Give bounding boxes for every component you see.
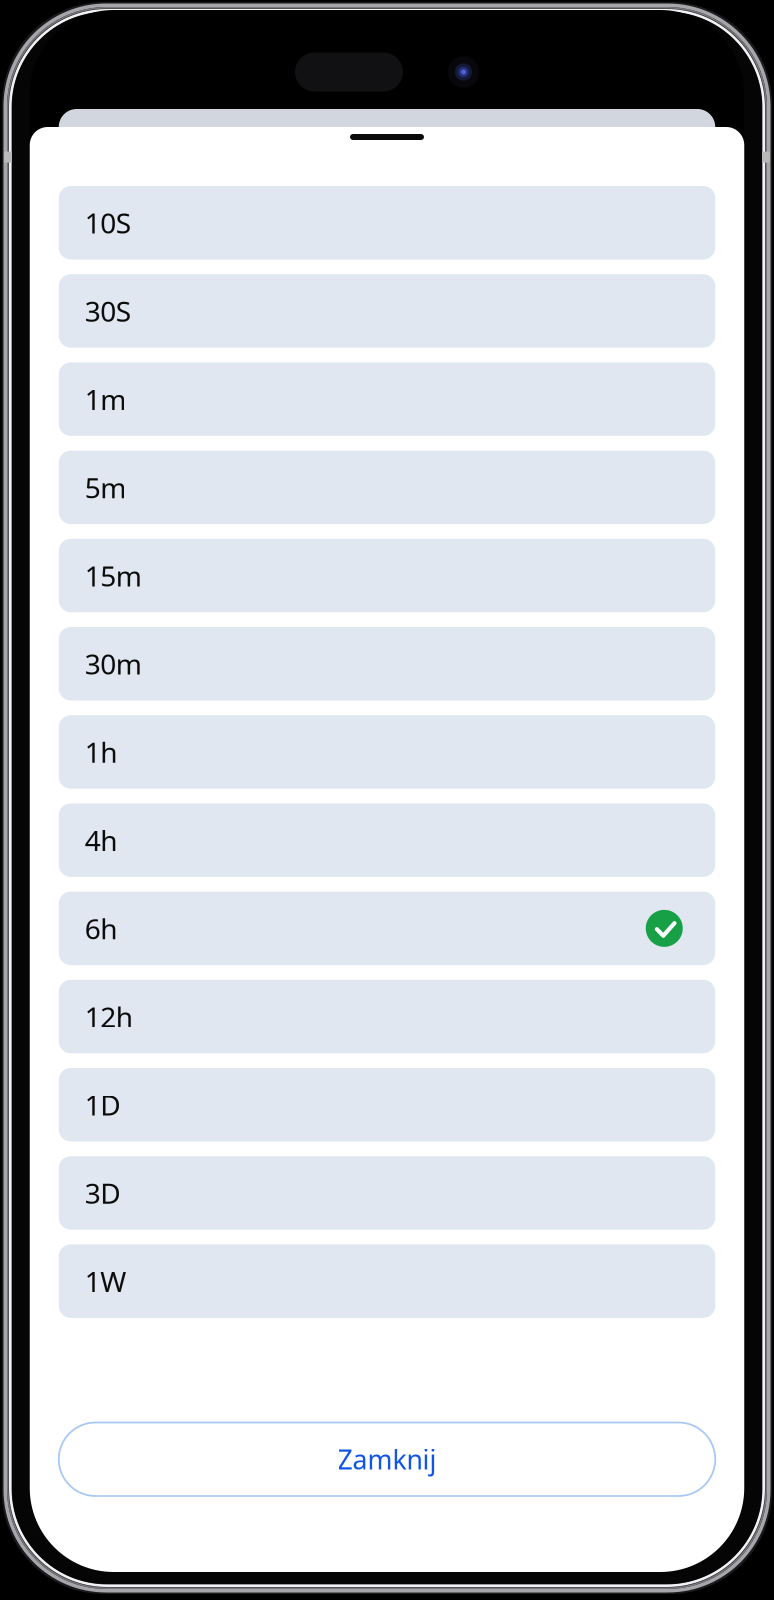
staticText: 30m [85,645,142,682]
staticText: 6h [85,910,117,947]
button[interactable]: 30m [59,627,715,700]
staticText: 1W [85,1263,126,1300]
staticText: 1m [85,381,126,418]
button[interactable]: 1m [59,362,715,436]
staticText: 10S [85,204,131,241]
button[interactable]: 15m [59,539,715,612]
staticText: 12h [85,998,133,1035]
button[interactable]: Zamknij [59,1422,715,1496]
button[interactable]: 30S [59,274,715,348]
staticText: 4h [85,822,117,859]
button[interactable]: 3D [59,1156,715,1230]
staticText: 30S [85,292,131,330]
staticText: 3D [85,1174,120,1212]
button[interactable]: 1W [59,1244,715,1318]
staticText: Zamknij [337,1441,436,1477]
staticText: 1h [85,733,117,771]
button[interactable]: 1D [59,1068,715,1141]
button[interactable]: 10S [59,186,715,259]
button[interactable]: 4h [59,803,715,877]
button[interactable]: 1h [59,715,715,789]
button[interactable]: 6h [59,892,715,965]
button[interactable]: 5m [59,451,715,524]
button[interactable]: 12h [59,980,715,1053]
staticText: 15m [85,557,142,594]
staticText: 5m [85,469,126,506]
staticText: 1D [85,1086,120,1123]
